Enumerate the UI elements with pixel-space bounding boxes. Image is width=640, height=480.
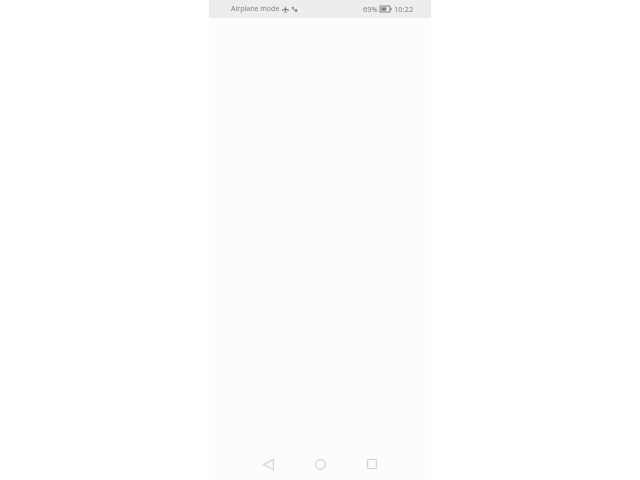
staticText: 69% (363, 4, 378, 14)
button[interactable]: Back (255, 451, 281, 477)
staticText: 10:22 (394, 4, 414, 14)
staticText: Airplane mode (231, 4, 280, 14)
button[interactable]: Recent apps (359, 451, 385, 477)
button[interactable]: Home (307, 451, 333, 477)
